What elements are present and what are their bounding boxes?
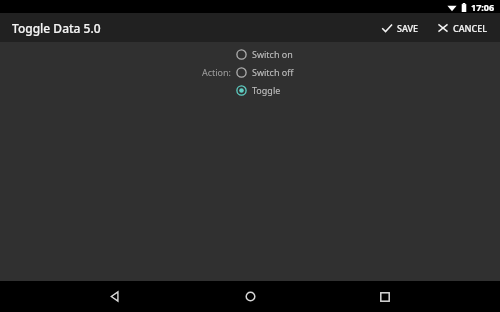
staticText: Switch on — [252, 48, 293, 60]
staticText: Toggle Data 5.0 — [12, 20, 101, 36]
button[interactable]: Recent apps — [365, 281, 405, 312]
button[interactable]: SAVE — [379, 18, 421, 38]
staticText: SAVE — [397, 22, 419, 34]
button[interactable]: Switch off — [235, 63, 295, 81]
staticText: Action: — [201, 66, 231, 78]
staticText: CANCEL — [453, 22, 488, 34]
button[interactable]: Back — [95, 281, 135, 312]
button[interactable]: Switch on — [235, 45, 294, 63]
staticText: Toggle — [252, 84, 281, 96]
staticText: Switch off — [252, 66, 294, 78]
button[interactable]: CANCEL — [435, 18, 490, 38]
button[interactable]: Toggle — [235, 81, 282, 99]
staticText: 17:06 — [471, 1, 495, 13]
button[interactable]: Home — [230, 281, 270, 312]
